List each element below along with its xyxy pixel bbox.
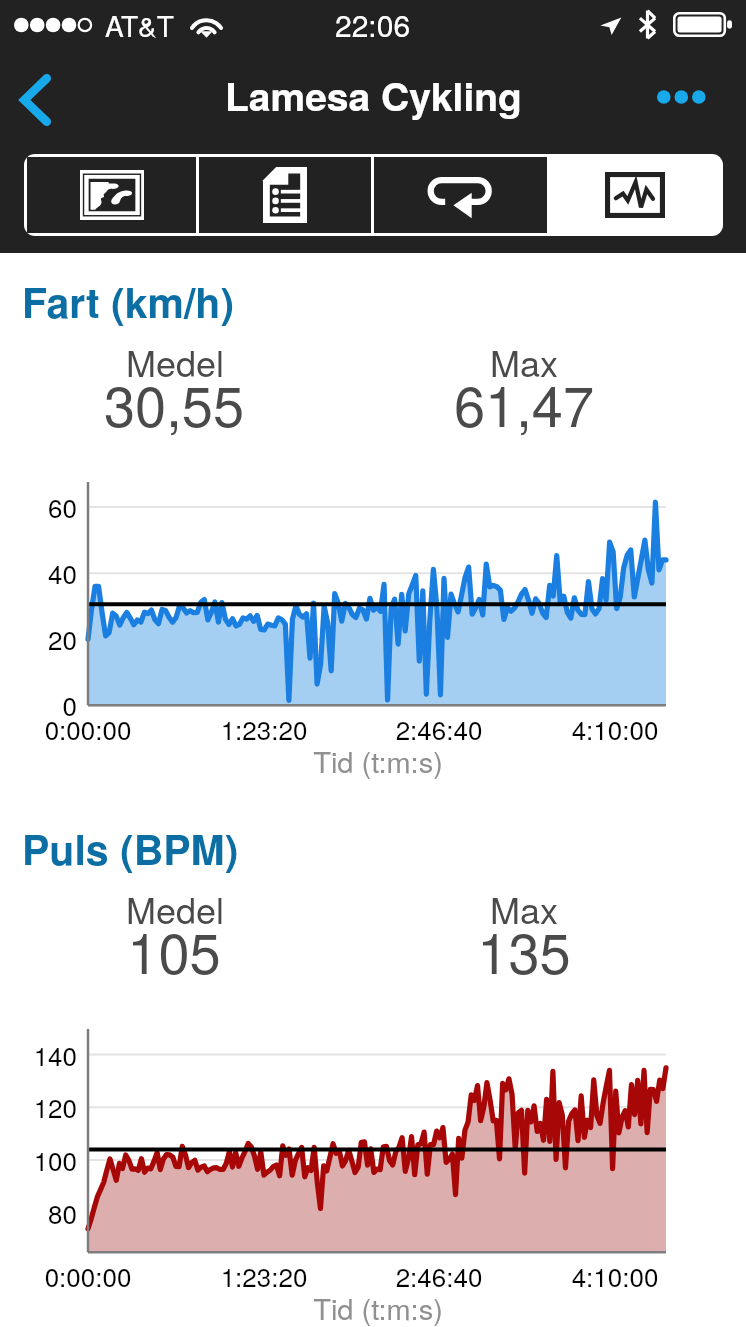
staticText: AT&T [105, 5, 174, 45]
staticText: 0:00:00 [0, 710, 238, 747]
staticText: 0 [0, 686, 77, 723]
staticText: Max [374, 883, 674, 935]
button[interactable]: Back [3, 63, 67, 137]
staticText: Tid (t:m:s) [228, 1287, 528, 1327]
staticText: 4:10:00 [465, 1257, 746, 1294]
button[interactable]: More options [650, 62, 712, 132]
staticText: 61,47 [374, 363, 674, 443]
staticText: Medel [25, 883, 325, 935]
button[interactable]: Charts [550, 157, 720, 233]
staticText: 60 [0, 488, 77, 525]
staticText: Lamesa Cykling [225, 67, 522, 123]
staticText: 1:23:20 [114, 1257, 414, 1294]
staticText: 105 [24, 910, 324, 990]
staticText: 4:10:00 [465, 710, 746, 747]
staticText: 0:00:00 [0, 1257, 238, 1294]
button[interactable]: Details [199, 157, 371, 233]
staticText: Puls (BPM) [22, 819, 239, 878]
staticText: 135 [374, 910, 674, 990]
button[interactable]: Laps [374, 157, 547, 233]
button[interactable]: Map [27, 157, 196, 233]
staticText: Medel [25, 336, 325, 388]
staticText: 20 [0, 620, 77, 657]
staticText: Max [374, 336, 674, 388]
staticText: 1:23:20 [114, 710, 414, 747]
staticText: Tid (t:m:s) [228, 740, 528, 782]
staticText: 140 [0, 1036, 77, 1073]
staticText: 30,55 [24, 363, 324, 443]
staticText: 22:06 [335, 3, 411, 46]
staticText: 2:46:40 [289, 710, 589, 747]
staticText: 80 [0, 1194, 77, 1231]
staticText: 100 [0, 1141, 77, 1178]
staticText: 2:46:40 [289, 1257, 589, 1294]
staticText: 40 [0, 554, 77, 591]
staticText: 120 [0, 1088, 77, 1125]
staticText: Fart (km/h) [22, 272, 235, 331]
